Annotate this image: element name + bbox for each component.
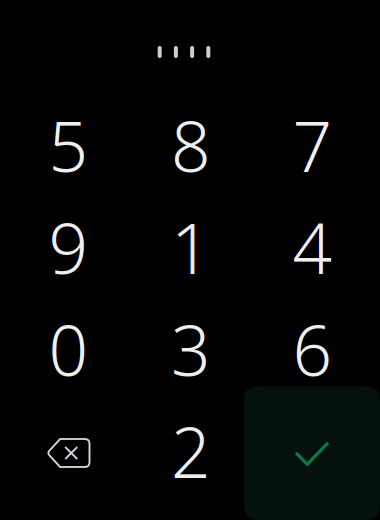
button[interactable]: 5 bbox=[13, 97, 123, 193]
button[interactable]: 4 bbox=[257, 199, 367, 295]
button[interactable]: Confirm bbox=[244, 386, 380, 520]
button[interactable]: 6 bbox=[257, 301, 367, 397]
button[interactable]: 8 bbox=[136, 97, 246, 193]
staticText: 5 bbox=[48, 99, 88, 191]
staticText: 4 bbox=[292, 201, 332, 293]
staticText: 7 bbox=[292, 99, 332, 191]
staticText: 3 bbox=[171, 303, 211, 395]
staticText: 2 bbox=[171, 405, 211, 497]
button[interactable]: 2 bbox=[136, 403, 246, 499]
button[interactable]: 0 bbox=[13, 301, 123, 397]
button[interactable]: 1 bbox=[136, 199, 246, 295]
button[interactable]: 9 bbox=[13, 199, 123, 295]
button[interactable]: 7 bbox=[257, 97, 367, 193]
button[interactable]: Delete bbox=[13, 403, 123, 499]
staticText: 0 bbox=[48, 303, 88, 395]
staticText: 9 bbox=[48, 201, 88, 293]
staticText: 6 bbox=[292, 303, 332, 395]
staticText: 8 bbox=[171, 99, 211, 191]
button[interactable]: 3 bbox=[136, 301, 246, 397]
staticText: 1 bbox=[171, 201, 211, 293]
